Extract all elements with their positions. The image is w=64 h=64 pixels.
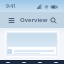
staticText: Overview [20, 16, 48, 24]
button[interactable] [5, 31, 59, 57]
button[interactable]: Navigation menu [5, 14, 17, 26]
button[interactable]: Profile [48, 60, 64, 64]
staticText: 9:41 [6, 3, 16, 10]
button[interactable]: Search [16, 60, 32, 64]
button[interactable]: Home [0, 60, 16, 64]
button[interactable]: Search [48, 14, 59, 26]
button[interactable]: Library [32, 60, 48, 64]
